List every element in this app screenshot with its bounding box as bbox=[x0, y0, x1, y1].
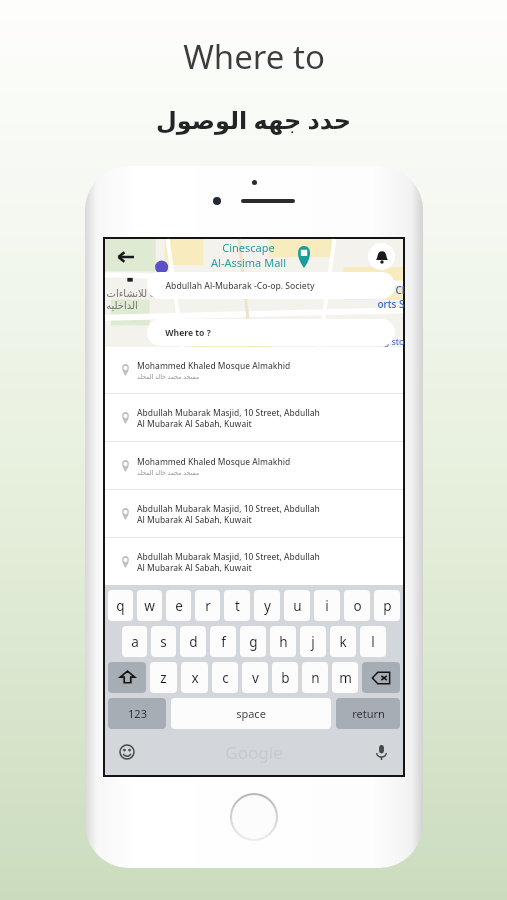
button[interactable]: Backspace bbox=[362, 662, 400, 693]
staticText: Cinescape bbox=[222, 240, 275, 255]
staticText: f bbox=[221, 633, 226, 651]
staticText: l bbox=[371, 633, 375, 651]
button[interactable]: Mohammed Khaled Mosque Almakhid bbox=[105, 347, 403, 393]
staticText: j bbox=[311, 633, 315, 651]
staticText: z bbox=[160, 669, 167, 687]
staticText: 123 bbox=[128, 706, 147, 721]
button[interactable]: Voice input bbox=[367, 738, 395, 766]
staticText: n bbox=[311, 669, 320, 687]
button[interactable]: i bbox=[314, 590, 340, 621]
button[interactable]: Abdullah Mubarak Masjid, 10 Street, Abdu… bbox=[105, 490, 403, 537]
staticText: space bbox=[236, 706, 266, 721]
staticText: Google bbox=[225, 741, 283, 764]
staticText: a bbox=[131, 633, 139, 651]
button[interactable]: y bbox=[254, 590, 280, 621]
button[interactable]: l bbox=[360, 626, 386, 657]
staticText: Abdullah Mubarak Masjid, 10 Street, Abdu… bbox=[137, 551, 320, 573]
staticText: e bbox=[175, 597, 183, 615]
button[interactable]: 123 bbox=[108, 698, 166, 729]
staticText: m bbox=[339, 669, 352, 687]
staticText: v bbox=[252, 669, 259, 687]
button[interactable]: Abdullah Mubarak Masjid, 10 Street, Abdu… bbox=[105, 538, 403, 585]
staticText: Where to bbox=[183, 34, 325, 79]
staticText: Mohammed Khaled Mosque Almakhid bbox=[137, 456, 291, 467]
staticText: Bhasin Cl bbox=[360, 283, 405, 297]
button[interactable]: h bbox=[270, 626, 296, 657]
staticText: مسجد محمد خالد المخلد bbox=[137, 372, 200, 380]
staticText: Abdullah Mubarak Masjid, 10 Street, Abdu… bbox=[137, 407, 320, 429]
staticText: Al-Assima Mall bbox=[211, 255, 286, 270]
staticText: w bbox=[144, 597, 155, 615]
staticText: t bbox=[235, 597, 240, 615]
staticText: i bbox=[325, 597, 329, 615]
staticText: p bbox=[383, 597, 392, 615]
staticText: Mohammed Khaled Mosque Almakhid bbox=[137, 360, 291, 371]
staticText: حدد جهه الوصول bbox=[156, 103, 351, 136]
button[interactable]: r bbox=[195, 590, 220, 621]
button[interactable]: m bbox=[332, 662, 358, 693]
staticText: return bbox=[352, 706, 385, 721]
button[interactable]: t bbox=[224, 590, 250, 621]
button[interactable]: v bbox=[242, 662, 268, 693]
button[interactable]: Back bbox=[112, 243, 140, 271]
button[interactable]: Shift bbox=[108, 662, 146, 693]
staticText: s bbox=[160, 633, 167, 651]
button[interactable]: o bbox=[344, 590, 370, 621]
button[interactable]: b bbox=[272, 662, 298, 693]
staticText: h bbox=[279, 633, 288, 651]
button[interactable]: Where to ? bbox=[147, 319, 395, 346]
staticText: orts S bbox=[377, 297, 405, 311]
button[interactable]: w bbox=[137, 590, 162, 621]
button[interactable]: d bbox=[180, 626, 206, 657]
staticText: Where to ? bbox=[165, 327, 211, 339]
staticText: c bbox=[222, 669, 229, 687]
staticText: q bbox=[116, 597, 125, 615]
button[interactable]: a bbox=[122, 626, 147, 657]
button[interactable]: return bbox=[336, 698, 400, 729]
button[interactable]: g bbox=[240, 626, 266, 657]
staticText: الادارة العامة للانشاءات bbox=[106, 286, 203, 300]
staticText: k bbox=[339, 633, 347, 651]
button[interactable]: Emoji bbox=[113, 738, 141, 766]
staticText: Abdullah Mubarak Masjid, 10 Street, Abdu… bbox=[137, 503, 320, 525]
button[interactable]: Abdullah Al-Mubarak -Co-op. Society bbox=[147, 272, 395, 299]
button[interactable]: n bbox=[302, 662, 328, 693]
staticText: o bbox=[353, 597, 362, 615]
button[interactable]: j bbox=[300, 626, 326, 657]
staticText: مسجد محمد خالد المخلد bbox=[137, 468, 200, 476]
staticText: u bbox=[293, 597, 302, 615]
button[interactable]: x bbox=[181, 662, 208, 693]
staticText: Abdullah Al-Mubarak -Co-op. Society bbox=[165, 280, 315, 292]
button[interactable]: f bbox=[210, 626, 236, 657]
staticText: b bbox=[281, 669, 290, 687]
staticText: d bbox=[189, 633, 198, 651]
button[interactable]: space bbox=[171, 698, 331, 729]
button[interactable]: q bbox=[108, 590, 133, 621]
staticText: y bbox=[264, 597, 271, 615]
button[interactable]: Notifications bbox=[368, 243, 395, 270]
staticText: Clothing sto bbox=[353, 335, 405, 347]
button[interactable]: c bbox=[212, 662, 238, 693]
button[interactable]: z bbox=[150, 662, 177, 693]
button[interactable]: s bbox=[151, 626, 176, 657]
staticText: g bbox=[249, 633, 258, 651]
button[interactable]: Abdullah Mubarak Masjid, 10 Street, Abdu… bbox=[105, 394, 403, 441]
staticText: r bbox=[205, 597, 211, 615]
button[interactable]: p bbox=[374, 590, 400, 621]
staticText: الداخليه bbox=[106, 300, 138, 312]
button[interactable]: k bbox=[330, 626, 356, 657]
button[interactable]: Mohammed Khaled Mosque Almakhid bbox=[105, 442, 403, 489]
staticText: x bbox=[191, 669, 199, 687]
button[interactable]: e bbox=[166, 590, 191, 621]
button[interactable]: u bbox=[284, 590, 310, 621]
